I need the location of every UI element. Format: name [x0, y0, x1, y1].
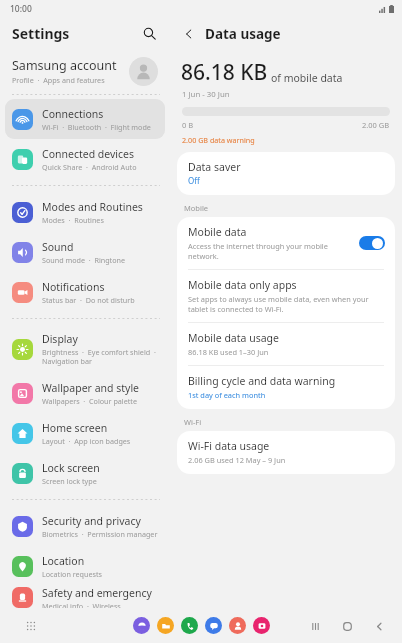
- button[interactable]: phone: [181, 617, 198, 634]
- staticText: Off: [188, 175, 200, 186]
- staticText: Status bar · Do not disturb: [42, 295, 135, 305]
- staticText: Location requests: [42, 569, 102, 579]
- button[interactable]: Modes and Routines: [5, 192, 165, 232]
- staticText: Data saver: [188, 160, 241, 174]
- staticText: Sound: [42, 240, 74, 254]
- button[interactable]: Notifications: [5, 272, 165, 312]
- staticText: Set apps to always use mobile data, even…: [188, 294, 384, 314]
- button[interactable]: Billing cycle and data warning: [177, 366, 395, 409]
- button[interactable]: Mobile data usage: [177, 323, 395, 365]
- staticText: Mobile data usage: [188, 331, 279, 345]
- button[interactable]: Data saver: [177, 152, 395, 195]
- button[interactable]: internet: [133, 617, 150, 634]
- staticText: Wi-Fi data usage: [188, 439, 270, 453]
- staticText: Wallpapers · Colour palette: [42, 396, 137, 406]
- staticText: Mobile: [184, 203, 209, 213]
- staticText: Wi-Fi · Bluetooth · Flight mode: [42, 122, 151, 132]
- staticText: Wi-Fi: [184, 417, 202, 427]
- button[interactable]: Sound: [5, 232, 165, 272]
- staticText: 1 Jun - 30 Jun: [182, 89, 230, 100]
- staticText: Screen lock type: [42, 476, 97, 486]
- staticText: Connections: [42, 107, 104, 121]
- button[interactable]: Wallpaper and style: [5, 373, 165, 413]
- staticText: 0 B: [182, 120, 194, 130]
- staticText: Lock screen: [42, 461, 100, 475]
- button[interactable]: Back: [370, 617, 388, 635]
- button[interactable]: Display: [5, 325, 165, 373]
- staticText: 10:00: [10, 3, 32, 15]
- staticText: Home screen: [42, 421, 108, 435]
- staticText: Samsung account: [12, 57, 117, 74]
- staticText: of mobile data: [271, 71, 343, 85]
- staticText: Billing cycle and data warning: [188, 374, 336, 388]
- button[interactable]: Home screen: [5, 413, 165, 453]
- staticText: Location: [42, 554, 85, 568]
- button[interactable]: Home: [338, 617, 356, 635]
- staticText: Access the internet through your mobile …: [188, 241, 353, 261]
- staticText: Quick Share · Android Auto: [42, 162, 137, 172]
- staticText: 2.00 GB: [362, 120, 390, 130]
- staticText: Wallpaper and style: [42, 381, 140, 395]
- button[interactable]: Search settings: [138, 22, 160, 44]
- staticText: Notifications: [42, 280, 105, 294]
- button[interactable]: Connections: [5, 99, 165, 139]
- button[interactable]: Back: [178, 23, 200, 45]
- staticText: Mobile data only apps: [188, 278, 297, 292]
- staticText: Mobile data: [188, 225, 247, 239]
- staticText: Biometrics · Permission manager: [42, 529, 158, 539]
- staticText: Modes and Routines: [42, 200, 143, 214]
- button[interactable]: Safety and emergency: [5, 586, 165, 608]
- staticText: Modes · Routines: [42, 215, 104, 225]
- button[interactable]: Lock screen: [5, 453, 165, 493]
- button[interactable]: Mobile data only apps: [177, 270, 395, 322]
- button[interactable]: messages: [205, 617, 222, 634]
- button[interactable]: Location: [5, 546, 165, 586]
- button[interactable]: Connected devices: [5, 139, 165, 179]
- button[interactable]: gallery: [253, 617, 270, 634]
- button[interactable]: Mobile data: [177, 217, 395, 269]
- staticText: Safety and emergency: [42, 586, 152, 600]
- button[interactable]: Wi-Fi data usage: [177, 431, 395, 474]
- staticText: 1st day of each month: [188, 390, 266, 400]
- staticText: Medical info · Wireless emergency alerts: [42, 601, 159, 608]
- button[interactable]: files: [157, 617, 174, 634]
- button[interactable]: Samsung account: [0, 48, 170, 94]
- staticText: 2.06 GB used 12 May – 9 Jun: [188, 455, 286, 465]
- staticText: Display: [42, 332, 78, 346]
- staticText: Sound mode · Ringtone: [42, 255, 126, 265]
- staticText: 86.18 KB: [181, 58, 268, 87]
- button[interactable]: Security and privacy: [5, 506, 165, 546]
- staticText: Security and privacy: [42, 514, 141, 528]
- button[interactable]: Apps: [20, 615, 42, 637]
- staticText: Data usage: [205, 25, 281, 43]
- button[interactable]: contacts: [229, 617, 246, 634]
- staticText: Layout · App icon badges: [42, 436, 131, 446]
- staticText: Settings: [12, 24, 70, 43]
- staticText: 86.18 KB used 1–30 Jun: [188, 347, 269, 357]
- staticText: Profile · Apps and features: [12, 75, 105, 85]
- button[interactable]: Recents: [306, 617, 324, 635]
- staticText: Brightness · Eye comfort shield · Naviga…: [42, 347, 156, 366]
- staticText: Connected devices: [42, 147, 135, 161]
- staticText: 2.00 GB data warning: [182, 135, 255, 145]
